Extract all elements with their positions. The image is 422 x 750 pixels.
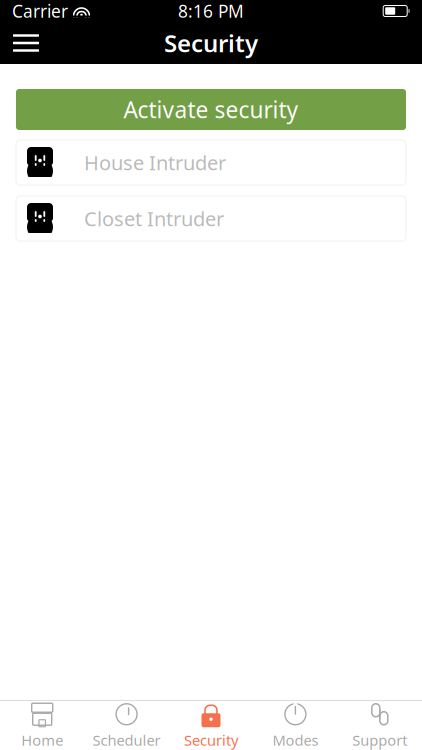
button[interactable]: Home <box>0 701 84 750</box>
button[interactable]: Activate security <box>16 89 406 130</box>
button[interactable]: House Intruder <box>16 140 406 185</box>
staticText: 8:16 PM <box>178 0 244 22</box>
staticText: Activate security <box>123 94 298 124</box>
button[interactable]: Scheduler <box>84 701 169 750</box>
button[interactable]: Security <box>169 701 253 750</box>
staticText: Home <box>21 730 63 750</box>
button[interactable]: Closet Intruder <box>16 196 406 241</box>
staticText: House Intruder <box>84 149 226 176</box>
button[interactable]: Modes <box>253 701 338 750</box>
button[interactable]: Menu <box>4 22 48 64</box>
staticText: Closet Intruder <box>84 205 224 232</box>
staticText: Carrier <box>12 0 68 22</box>
staticText: Modes <box>272 730 318 750</box>
staticText: Support <box>352 730 407 750</box>
staticText: Security <box>164 27 258 59</box>
button[interactable]: Support <box>338 701 422 750</box>
staticText: Security <box>184 730 238 750</box>
staticText: Scheduler <box>93 730 161 750</box>
